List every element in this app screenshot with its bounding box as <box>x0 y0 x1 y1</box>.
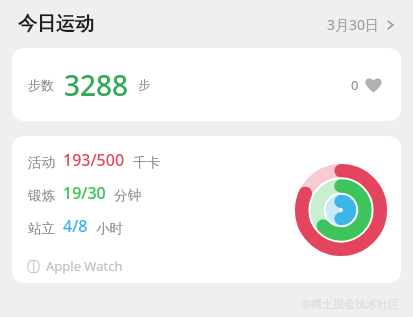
button[interactable]: Favorite <box>348 73 385 97</box>
staticText: 锻炼 <box>28 187 55 204</box>
staticText: 小时 <box>96 220 123 237</box>
button[interactable]: 3月30日 <box>323 11 399 38</box>
staticText: 站立 <box>28 220 55 237</box>
staticText: 19/30 <box>63 182 106 204</box>
staticText: 4/8 <box>63 215 88 237</box>
staticText: 分钟 <box>114 187 141 204</box>
staticText: 3288 <box>64 66 129 104</box>
other: Activity rings <box>295 164 387 256</box>
staticText: 步数 <box>28 77 54 93</box>
button[interactable]: 活动 <box>12 136 401 283</box>
staticText: 千卡 <box>133 154 160 171</box>
staticText: 步 <box>138 77 150 92</box>
staticText: 193/500 <box>63 149 125 171</box>
staticText: 0 <box>351 76 359 94</box>
staticText: 活动 <box>28 154 55 171</box>
button[interactable]: 步数 <box>12 48 401 121</box>
staticText: Apple Watch <box>46 257 123 275</box>
staticText: @稀土掘金技术社区 <box>301 296 399 311</box>
staticText: 3月30日 <box>327 15 380 34</box>
staticText: 今日运动 <box>18 12 94 36</box>
